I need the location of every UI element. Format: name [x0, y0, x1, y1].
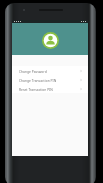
button[interactable]: Change Transaction PIN: [12, 75, 88, 84]
button[interactable]: Reset Transaction PIN: [12, 84, 88, 93]
button[interactable]: Change Password: [12, 66, 88, 75]
staticText: Change Transaction PIN: [19, 78, 57, 82]
staticText: Reset Transaction PIN: [19, 87, 53, 91]
staticText: Change Password: [19, 69, 47, 73]
